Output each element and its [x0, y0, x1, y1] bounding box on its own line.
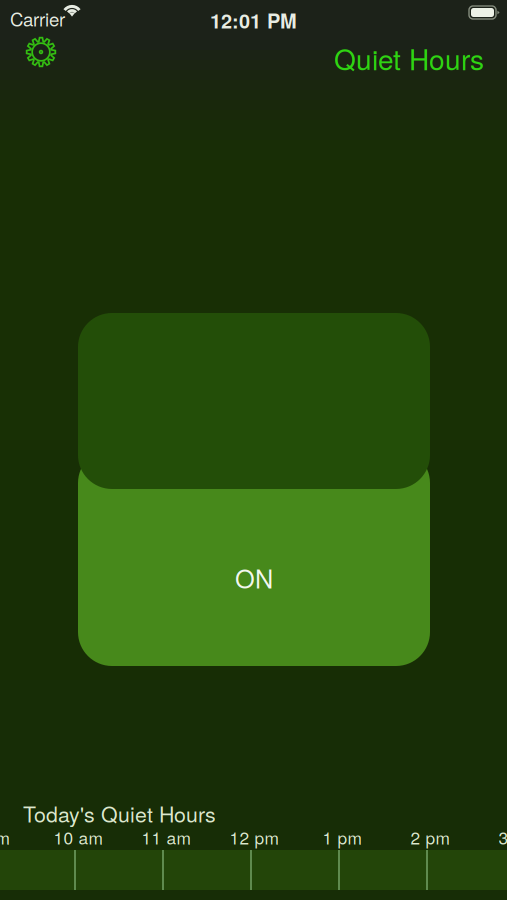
staticText: 10 am	[53, 825, 102, 849]
staticText: 1 pm	[322, 825, 361, 849]
staticText: 12:01 PM	[210, 6, 297, 35]
staticText: Carrier	[10, 5, 65, 32]
staticText: ON	[235, 559, 273, 596]
button[interactable]: ON	[78, 313, 430, 666]
staticText: 11 am	[141, 825, 190, 849]
staticText: 12 pm	[229, 825, 278, 849]
staticText: 9 am	[0, 825, 9, 849]
staticText: Today's Quiet Hours	[23, 798, 216, 828]
staticText: 3 pm	[498, 825, 507, 849]
staticText: 2 pm	[410, 825, 449, 849]
button[interactable]: Settings	[19, 30, 63, 74]
staticText: Quiet Hours	[334, 38, 484, 78]
